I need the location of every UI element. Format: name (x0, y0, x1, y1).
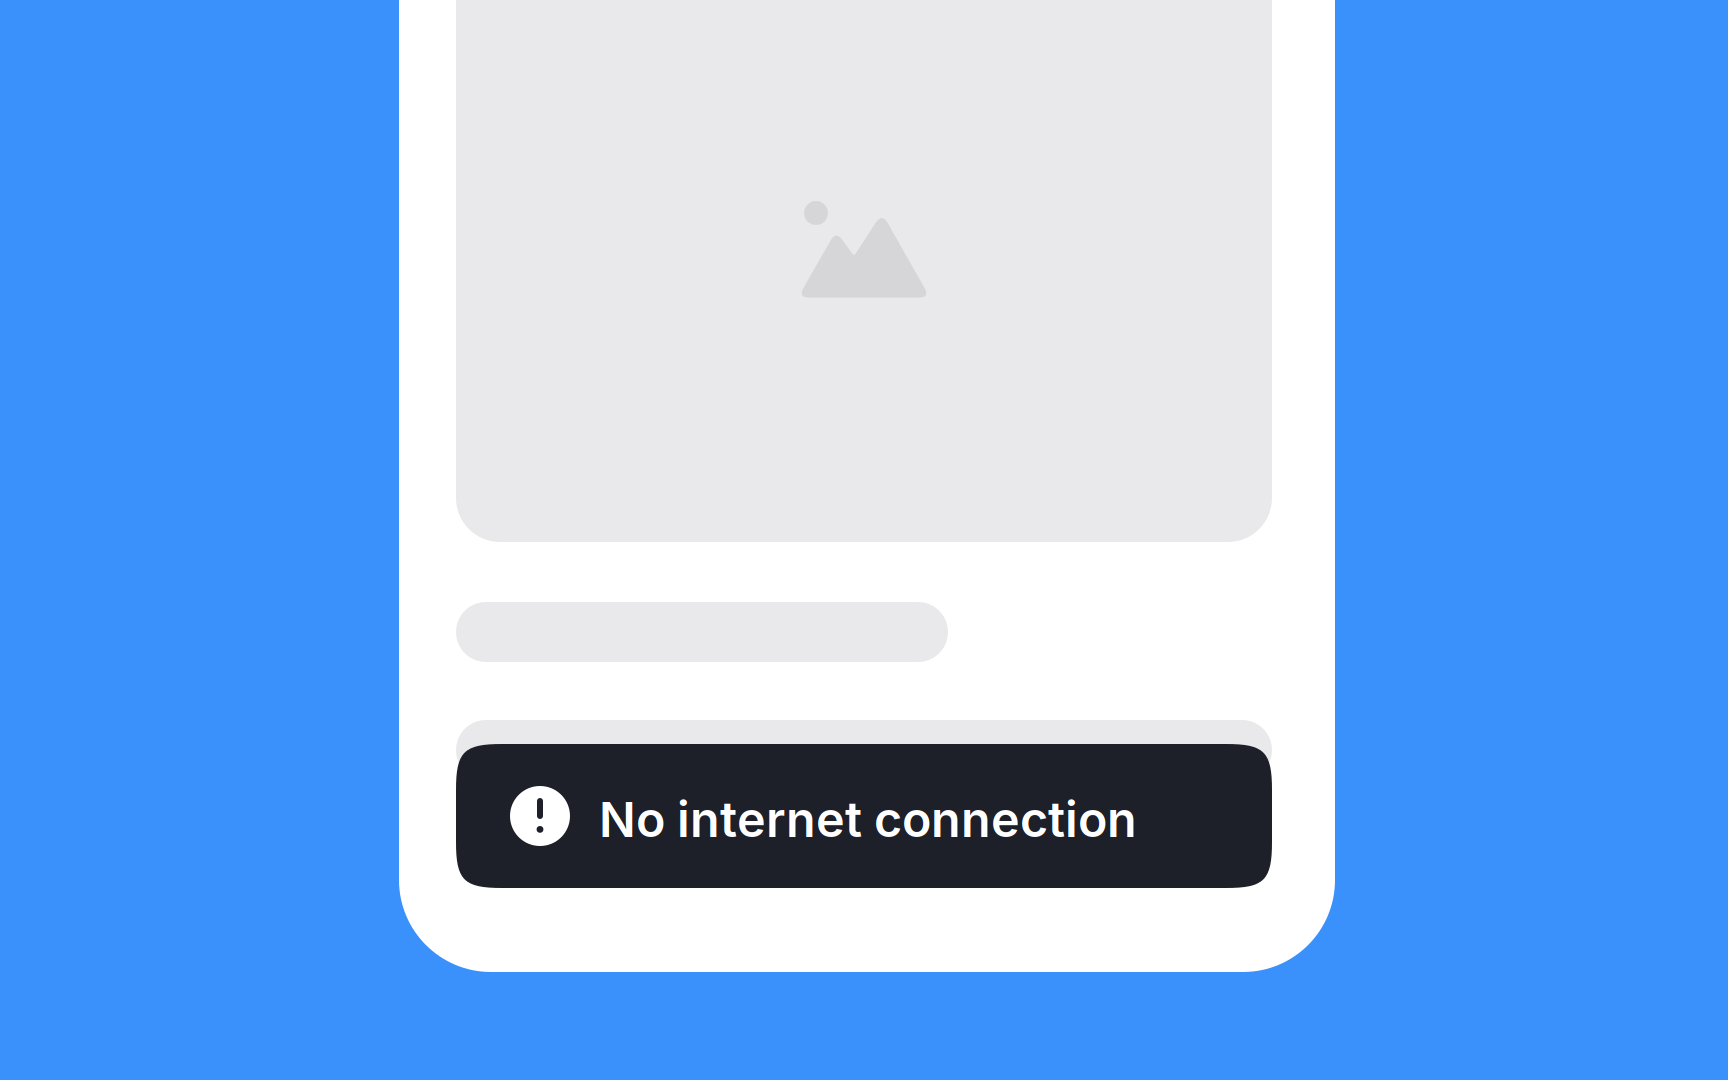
staticText: No internet connection (599, 790, 1137, 849)
button[interactable]: No internet connection (456, 744, 1272, 888)
